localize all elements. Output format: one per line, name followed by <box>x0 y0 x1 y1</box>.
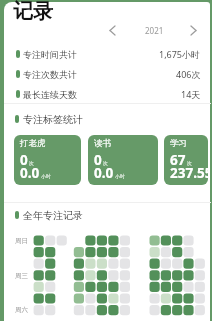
staticText: 全年专注记录 <box>23 209 83 221</box>
staticText: 次 <box>29 160 34 166</box>
staticText: 67 <box>170 151 186 169</box>
staticText: 次 <box>103 160 108 166</box>
staticText: 0 <box>20 151 28 169</box>
staticText: 专注标签统计 <box>23 113 83 125</box>
staticText: 0 <box>94 151 102 169</box>
staticText: 读书 <box>94 138 111 149</box>
staticText: 周日 <box>15 237 28 245</box>
button[interactable]: 学习 <box>164 135 208 185</box>
button[interactable]: 打老虎 <box>14 135 81 185</box>
staticText: 次 <box>187 160 192 166</box>
button[interactable] <box>185 22 201 38</box>
staticText: 0.0 <box>94 164 114 182</box>
staticText: 小时 <box>41 173 51 179</box>
staticText: 记录 <box>13 0 53 24</box>
staticText: 0.0 <box>20 164 40 182</box>
staticText: 14天 <box>181 88 201 100</box>
staticText: 周三 <box>15 272 28 280</box>
staticText: 最长连续天数 <box>23 89 77 100</box>
staticText: 专注次数共计 <box>23 69 77 80</box>
staticText: 237.55 <box>170 164 208 182</box>
staticText: 学习 <box>170 138 187 149</box>
staticText: 406次 <box>176 68 201 80</box>
staticText: 专注时间共计 <box>23 49 77 60</box>
staticText: 1,675小时 <box>159 48 201 60</box>
staticText: 2021 <box>145 25 164 36</box>
staticText: 小时 <box>115 173 125 179</box>
staticText: 周六 <box>15 306 28 314</box>
button[interactable] <box>104 22 120 38</box>
button[interactable]: 读书 <box>88 135 158 185</box>
staticText: 打老虎 <box>20 138 46 149</box>
